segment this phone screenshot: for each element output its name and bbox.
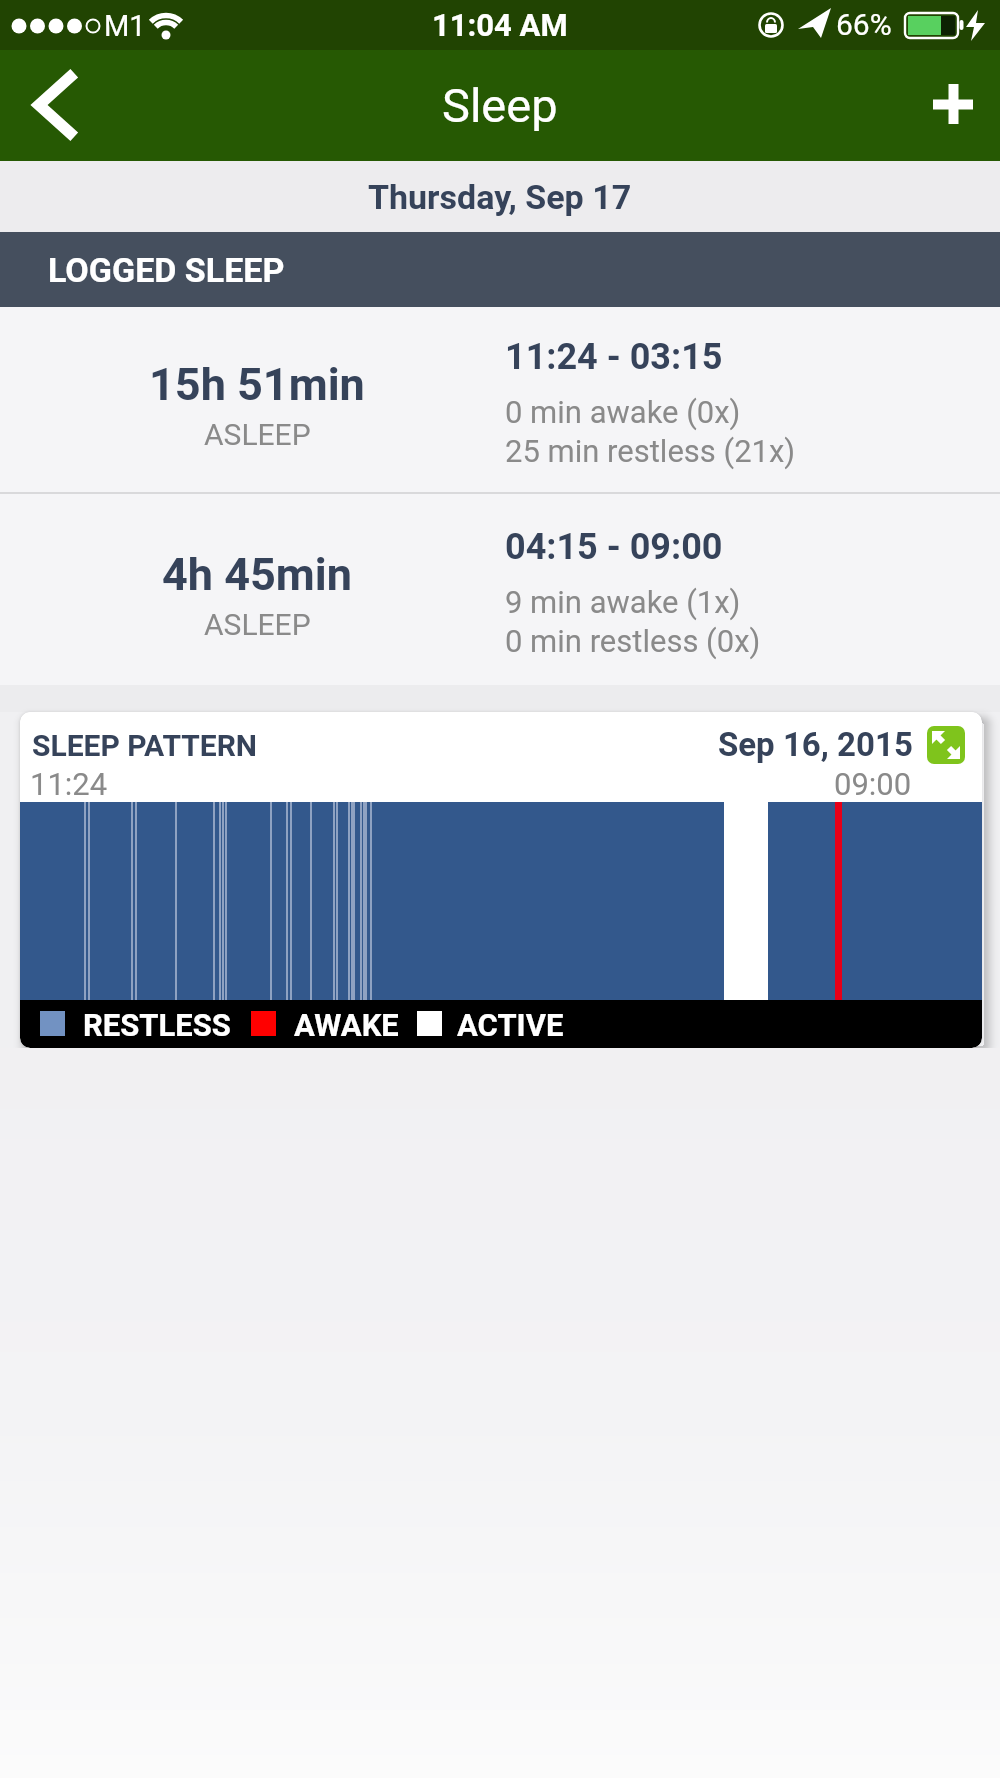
staticText: SLEEP PATTERN — [32, 728, 258, 763]
staticText: AWAKE — [294, 1007, 399, 1043]
button[interactable] — [18, 67, 88, 142]
staticText: 9 min awake (1x) — [505, 584, 741, 620]
staticText: 25 min restless (21x) — [505, 433, 796, 469]
staticText: ACTIVE — [457, 1007, 564, 1043]
staticText: Sep 16, 2015 — [718, 725, 913, 764]
staticText: 15h 51min — [149, 358, 365, 411]
staticText: LOGGED SLEEP — [48, 250, 285, 290]
staticText: 4h 45min — [162, 548, 352, 601]
staticText: ASLEEP — [204, 417, 311, 452]
staticText: Thursday, Sep 17 — [368, 177, 632, 217]
staticText: ASLEEP — [204, 607, 311, 642]
staticText: Sleep — [442, 78, 558, 133]
button[interactable]: 4h 45min — [0, 494, 1000, 685]
staticText: 11:24 - 03:15 — [505, 336, 723, 378]
button[interactable] — [927, 726, 965, 764]
button[interactable]: 15h 51min — [0, 307, 1000, 492]
button[interactable]: SLEEP PATTERN — [20, 712, 982, 1048]
staticText: 0 min restless (0x) — [505, 623, 761, 659]
staticText: 11:04 AM — [432, 7, 568, 43]
button[interactable] — [918, 69, 988, 139]
staticText: 09:00 — [834, 766, 912, 802]
staticText: M1 — [104, 9, 146, 43]
staticText: 0 min awake (0x) — [505, 394, 741, 430]
staticText: RESTLESS — [83, 1007, 231, 1043]
staticText: 04:15 - 09:00 — [505, 526, 723, 568]
staticText: 66% — [836, 7, 892, 42]
staticText: 11:24 — [30, 766, 108, 802]
